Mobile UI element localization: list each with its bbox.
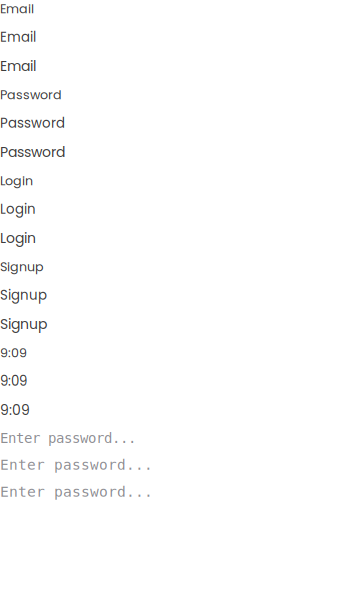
staticText: Password <box>0 114 65 132</box>
staticText: 9:09 <box>0 372 27 390</box>
staticText: Email <box>0 0 34 18</box>
staticText: Enter password... <box>0 430 136 446</box>
staticText: Signup <box>0 314 47 334</box>
staticText: 9:09 <box>0 344 27 362</box>
staticText: Login <box>0 228 36 248</box>
staticText: Email <box>0 28 36 46</box>
staticText: Login <box>0 200 36 218</box>
staticText: Signup <box>0 286 47 304</box>
staticText: Enter password... <box>0 483 153 500</box>
staticText: Email <box>0 56 36 76</box>
staticText: 9:09 <box>0 400 30 420</box>
staticText: Signup <box>0 258 44 276</box>
staticText: Password <box>0 142 65 162</box>
staticText: Login <box>0 172 33 190</box>
staticText: Password <box>0 86 62 104</box>
staticText: Enter password... <box>0 456 153 473</box>
